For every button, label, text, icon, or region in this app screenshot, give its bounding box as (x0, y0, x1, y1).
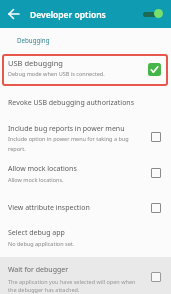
staticText: Allow mock locations (8, 164, 77, 174)
staticText: Include bug reports in power menu (8, 124, 125, 134)
button[interactable] (0, 257, 171, 294)
button[interactable] (151, 168, 161, 178)
button[interactable] (0, 192, 171, 222)
button[interactable] (151, 132, 161, 142)
staticText: Wait for debugger (8, 265, 69, 275)
button[interactable] (0, 92, 171, 114)
staticText: Debugging (17, 36, 50, 44)
button[interactable] (2, 54, 168, 86)
button[interactable] (148, 63, 161, 76)
staticText: The application you have selected will o… (8, 278, 136, 294)
staticText: Revoke USB debugging authorizations (8, 98, 135, 108)
staticText: USB debugging (8, 58, 63, 68)
button[interactable] (140, 5, 166, 23)
staticText: Select debug app (8, 228, 65, 238)
staticText: No debug application set. (8, 240, 75, 247)
staticText: Allow mock locations. (8, 176, 64, 183)
staticText: Debug mode when USB is connected. (8, 70, 105, 77)
button[interactable] (0, 222, 171, 256)
button[interactable] (0, 115, 171, 157)
staticText: Developer options (30, 9, 106, 21)
button[interactable] (0, 157, 171, 192)
staticText: Include option in power menu for taking … (8, 135, 129, 152)
button[interactable] (4, 4, 24, 24)
button[interactable] (151, 203, 161, 213)
staticText: View attribute inspection (8, 203, 90, 213)
